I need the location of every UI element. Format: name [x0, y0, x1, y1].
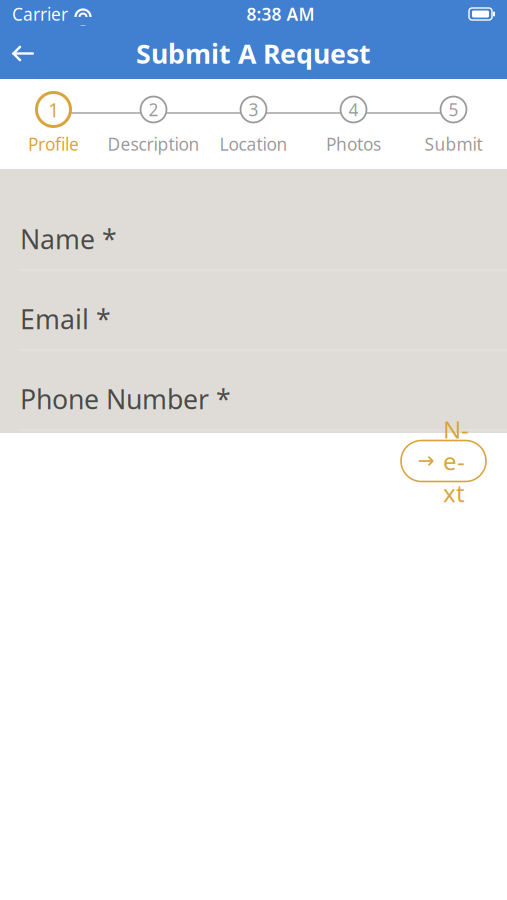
staticText: Submit: [424, 132, 482, 155]
staticText: Email *: [20, 301, 111, 336]
staticText: Carrier: [12, 2, 68, 25]
staticText: 1: [48, 96, 59, 123]
staticText: 4: [348, 98, 358, 121]
button[interactable]: 4: [303, 92, 403, 155]
button[interactable]: Phone Number *: [0, 350, 507, 430]
staticText: Submit A Request: [136, 36, 371, 71]
staticText: Name *: [20, 221, 117, 256]
button[interactable]: 3: [203, 92, 303, 155]
staticText: Next: [443, 413, 469, 509]
staticText: 2: [148, 98, 158, 121]
button[interactable]: Next: [401, 440, 486, 481]
button[interactable]: 5: [403, 92, 503, 155]
staticText: 3: [248, 98, 258, 121]
staticText: Location: [219, 132, 287, 155]
button[interactable]: Name *: [0, 190, 507, 270]
staticText: Phone Number *: [20, 381, 231, 416]
staticText: Profile: [28, 132, 79, 155]
button[interactable]: Back: [0, 28, 46, 79]
staticText: 5: [448, 98, 458, 121]
staticText: 8:38 AM: [246, 2, 314, 25]
staticText: Photos: [326, 132, 381, 155]
button[interactable]: Email *: [0, 270, 507, 350]
button[interactable]: 2: [103, 92, 203, 155]
staticText: Description: [107, 132, 199, 155]
button[interactable]: 1: [3, 92, 103, 155]
